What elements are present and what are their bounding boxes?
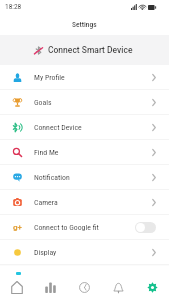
button[interactable]: Display	[0, 240, 169, 265]
button[interactable]: Statistics	[33, 266, 67, 300]
staticText: g+	[13, 223, 22, 232]
staticText: Connect Device	[34, 123, 82, 132]
staticText: My Profile	[34, 73, 65, 82]
button[interactable]: My Profile	[0, 65, 169, 90]
button[interactable]: History	[67, 266, 101, 300]
staticText: 18:28	[5, 3, 22, 11]
staticText: Camera	[34, 198, 58, 207]
button[interactable]: Settings	[135, 266, 169, 300]
staticText: Display	[34, 248, 57, 257]
button[interactable]: Find Me	[0, 140, 169, 165]
staticText: Connect Smart Device	[48, 45, 133, 55]
staticText: Notification	[34, 173, 70, 182]
staticText: Settings	[72, 20, 97, 29]
button[interactable]: Notification	[0, 165, 169, 190]
button[interactable]: Connect Device	[0, 115, 169, 140]
staticText: Connect to Google fit	[34, 223, 99, 232]
staticText: Goals	[34, 98, 52, 107]
button[interactable]: Connect Smart Device	[0, 35, 169, 65]
button[interactable]: Home	[0, 266, 33, 300]
button[interactable]: Camera	[0, 190, 169, 215]
button[interactable]: g+	[0, 215, 169, 240]
button[interactable]: Alerts	[101, 266, 135, 300]
staticText: Find Me	[34, 148, 59, 157]
button[interactable]: Goals	[0, 90, 169, 115]
